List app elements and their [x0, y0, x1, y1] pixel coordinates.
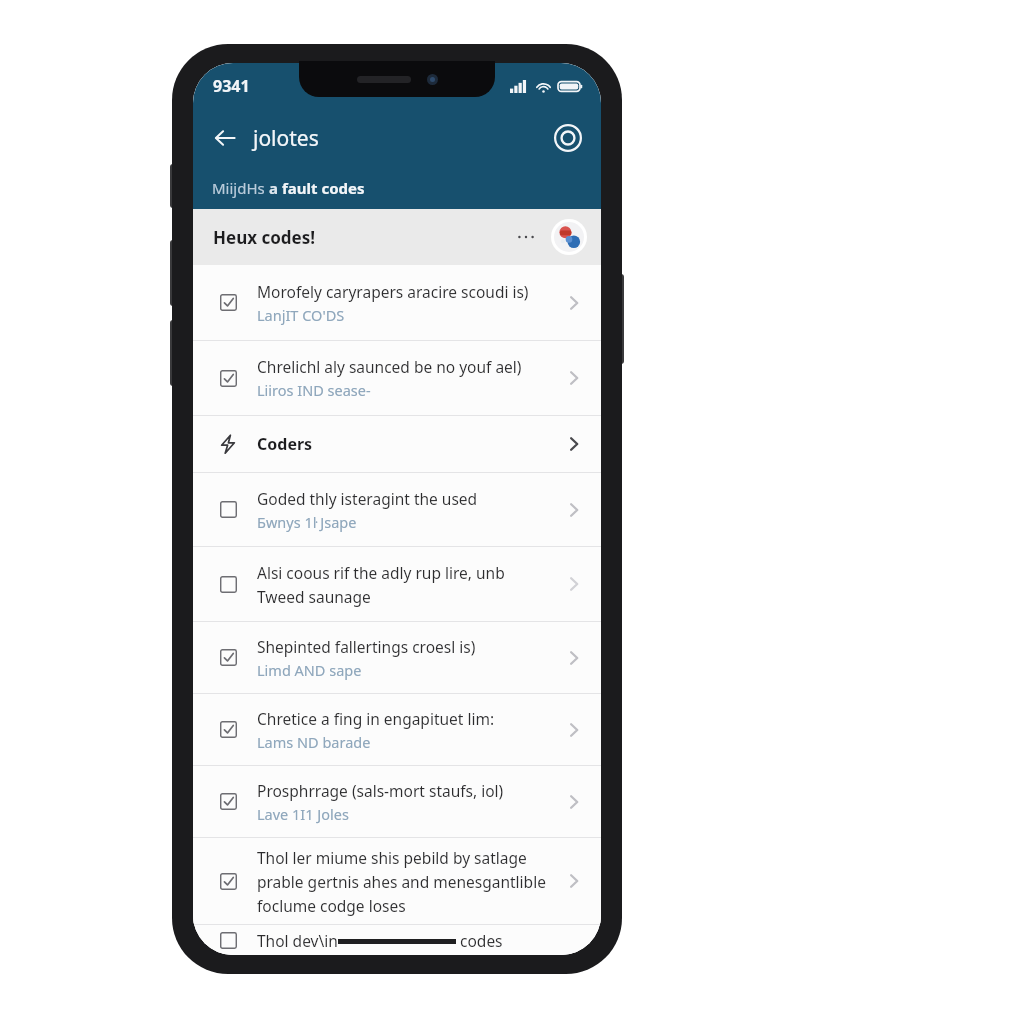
staticText: Liiros IND sease- [257, 380, 371, 400]
button[interactable]: Chretice a fing in engapituet lim: [193, 694, 601, 765]
button[interactable]: Morofely caryrapers aracire scoudi is) [193, 265, 601, 340]
staticText: codes [456, 930, 503, 951]
staticText: Goded thly isteragint the used [257, 488, 478, 509]
staticText: Shepinted fallertings croesl is) [257, 636, 476, 657]
button[interactable]: Alsi coous rif the adly rup lire, unb [193, 547, 601, 621]
staticText: Ƃwnys 1ŀ Jsape [257, 512, 357, 532]
staticText: Tweed saunage [257, 586, 371, 607]
button[interactable]: More options [509, 220, 543, 254]
staticText: Thol ler miume shis pebild by satlage [257, 847, 527, 868]
staticText: 9341 [213, 75, 250, 97]
staticText: jolotes [253, 124, 319, 153]
staticText: Prosphrrage (sals-mort staufs, iol) [257, 780, 504, 801]
staticText: Alsi coous rif the adly rup lire, unb [257, 562, 505, 583]
button[interactable]: Thol ler miume shis pebild by satlage [193, 838, 601, 924]
staticText: MiijdHs [212, 178, 269, 198]
button[interactable]: Prosphrrage (sals-mort staufs, iol) [193, 766, 601, 837]
staticText: Limd AND sape [257, 660, 362, 680]
button[interactable]: Heux codes! [193, 209, 601, 265]
staticText: Thol dev\in [257, 930, 338, 951]
staticText: foclume codge loses [257, 895, 406, 916]
button[interactable]: Shepinted fallertings croesl is) [193, 622, 601, 693]
button[interactable]: Chrelichl aly saunced be no youf ael) [193, 341, 601, 415]
staticText: fault codes [282, 178, 365, 198]
staticText: Heux codes! [213, 226, 316, 249]
staticText: prable gertnis ahes and menesgantlible [257, 871, 546, 892]
staticText: a [269, 178, 282, 198]
staticText: Chretice a fing in engapituet lim: [257, 708, 495, 729]
staticText: LanjIT CO'DS [257, 305, 345, 325]
button[interactable]: Thol dev\in [193, 925, 601, 955]
staticText: Lave 1I1 Joles [257, 804, 349, 824]
button[interactable]: Record [549, 119, 587, 157]
staticText: Lams ND barade [257, 732, 371, 752]
button[interactable]: Back [205, 118, 245, 158]
staticText: Coders [257, 433, 313, 455]
staticText: Chrelichl aly saunced be no youf ael) [257, 356, 522, 377]
button[interactable]: Coders [193, 416, 601, 472]
button[interactable]: Goded thly isteragint the used [193, 473, 601, 546]
button[interactable]: Profile [551, 219, 587, 255]
staticText: Morofely caryrapers aracire scoudi is) [257, 281, 529, 302]
